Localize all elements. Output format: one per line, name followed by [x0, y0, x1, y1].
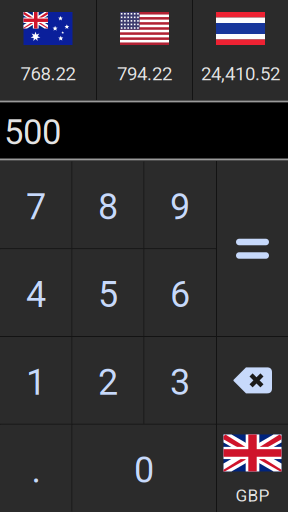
button[interactable]: Equals [217, 161, 288, 336]
staticText: 6 [170, 273, 190, 316]
button[interactable]: 7 [0, 161, 71, 248]
staticText: 1 [26, 361, 46, 403]
button[interactable]: Delete [217, 337, 288, 424]
staticText: 0 [134, 449, 154, 491]
staticText: GBP [235, 485, 269, 506]
button[interactable]: 9 [144, 161, 215, 248]
staticText: 4 [26, 273, 46, 316]
button[interactable]: 2 [72, 337, 143, 424]
button[interactable]: 3 [144, 337, 215, 424]
button[interactable]: GBP [217, 425, 288, 512]
staticText: 7 [26, 186, 46, 228]
button[interactable]: 1 [0, 337, 71, 424]
staticText: 24,410.52 [201, 63, 280, 85]
staticText: 9 [170, 186, 190, 228]
staticText: . [31, 449, 40, 491]
button[interactable]: 24,410.52 [193, 0, 288, 100]
button[interactable]: 0 [72, 425, 215, 512]
button[interactable]: 8 [72, 161, 143, 248]
button[interactable]: 5 [72, 249, 143, 336]
button[interactable]: 768.22 [0, 0, 96, 100]
staticText: 8 [98, 186, 118, 228]
button[interactable]: 6 [144, 249, 215, 336]
staticText: 500 [4, 112, 61, 153]
button[interactable]: 794.22 [97, 0, 192, 100]
staticText: 794.22 [117, 63, 172, 85]
staticText: 768.22 [20, 63, 75, 85]
button[interactable]: . [0, 425, 71, 512]
staticText: 2 [98, 361, 118, 403]
staticText: 5 [98, 273, 118, 316]
staticText: 3 [170, 361, 190, 403]
button[interactable]: 4 [0, 249, 71, 336]
